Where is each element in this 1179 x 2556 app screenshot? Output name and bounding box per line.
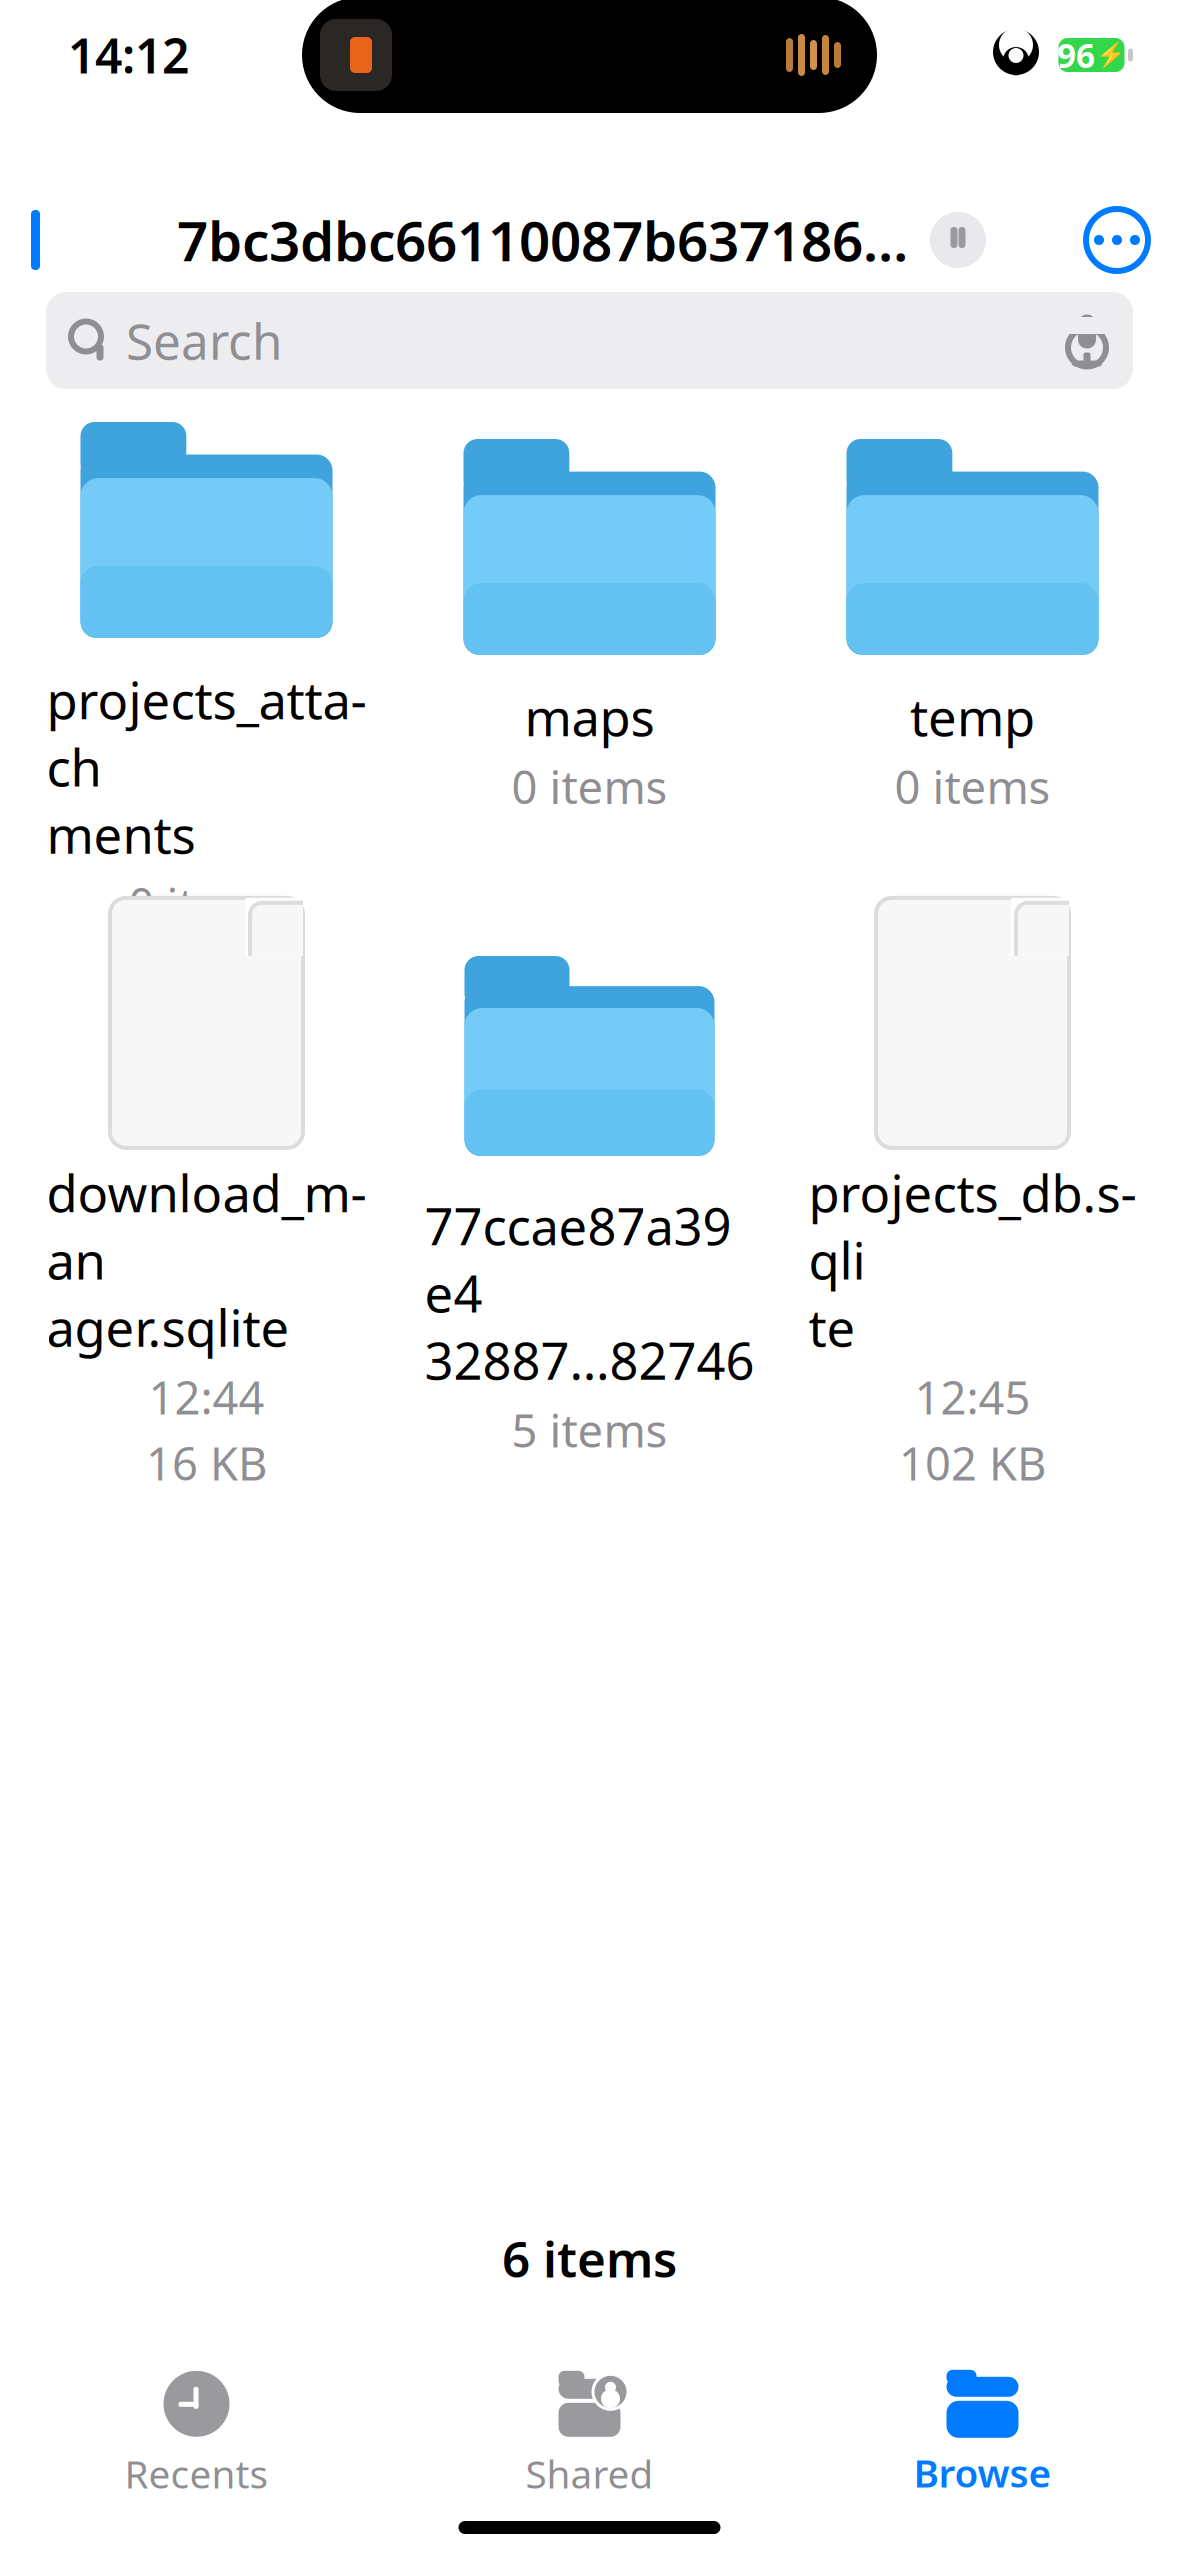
staticText: 102 KB: [899, 1433, 1046, 1493]
staticText: 96: [1057, 33, 1095, 77]
staticText: Browse: [913, 2447, 1051, 2498]
button[interactable]: Recents: [0, 2359, 393, 2509]
button[interactable]: Folder options: [930, 212, 986, 268]
button[interactable]: projects_db.sqli te: [781, 943, 1164, 1443]
staticText: 0 items: [128, 874, 284, 934]
staticText: 0 items: [511, 756, 667, 816]
staticText: ⚡: [1096, 41, 1126, 69]
staticText: 0 items: [894, 756, 1050, 816]
button[interactable]: Search: [46, 292, 1133, 389]
button[interactable]: projects_attach ments: [15, 417, 398, 917]
button[interactable]: temp: [781, 417, 1164, 917]
button[interactable]: Back: [0, 195, 82, 285]
staticText: download_man ager.sqlite: [46, 1159, 366, 1361]
staticText: 7bc3dbc66110087b637186…: [177, 204, 908, 276]
button[interactable]: Shared: [393, 2359, 786, 2509]
staticText: Search: [126, 308, 282, 373]
staticText: 77ccae87a39e4 32887…82746: [424, 1192, 754, 1394]
staticText: 6 items: [502, 2225, 677, 2291]
button[interactable]: 77ccae87a39e4 32887…82746: [398, 943, 781, 1443]
button[interactable]: download_man ager.sqlite: [15, 943, 398, 1443]
staticText: 16 KB: [146, 1433, 267, 1493]
staticText: Shared: [525, 2448, 653, 2499]
button[interactable]: maps: [398, 417, 781, 917]
button[interactable]: Browse: [786, 2359, 1179, 2509]
staticText: Recents: [124, 2448, 268, 2499]
staticText: 12:44: [148, 1367, 264, 1427]
staticText: projects_attach ments: [46, 666, 366, 868]
button[interactable]: More: [1081, 195, 1179, 285]
staticText: 12:45: [914, 1367, 1030, 1427]
staticText: projects_db.sqli te: [808, 1159, 1136, 1361]
staticText: maps: [524, 683, 654, 750]
staticText: 5 items: [511, 1400, 667, 1460]
staticText: temp: [910, 683, 1035, 750]
staticText: 14:12: [68, 23, 189, 87]
